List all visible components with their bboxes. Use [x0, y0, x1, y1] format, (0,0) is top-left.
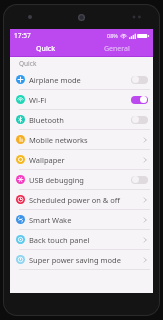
button[interactable]: Super power saving mode [10, 250, 153, 269]
other: Back touch panel [142, 235, 148, 245]
other: Scheduled power on & off [142, 195, 148, 205]
staticText: Scheduled power on & off [29, 195, 120, 205]
staticText: USB debugging [29, 175, 84, 185]
button[interactable]: Mobile networks [10, 130, 153, 149]
button[interactable]: Wallpaper [10, 150, 153, 169]
staticText: Airplane mode [29, 75, 81, 85]
staticText: 17:57 [14, 31, 31, 40]
button[interactable]: General [81, 42, 153, 56]
button[interactable]: Back touch panel [10, 230, 153, 249]
button[interactable]: Quick [10, 42, 81, 56]
staticText: Back touch panel [29, 235, 90, 245]
staticText: Super power saving mode [29, 255, 121, 265]
staticText: Smart Wake [29, 215, 72, 225]
other: Wallpaper [142, 155, 148, 165]
button[interactable]: USB debugging [10, 170, 153, 189]
staticText: Quick [36, 44, 56, 54]
staticText: 08% [107, 32, 118, 39]
staticText: Mobile networks [29, 135, 88, 145]
button[interactable]: Wi-Fi [10, 90, 153, 109]
staticText: Wallpaper [29, 155, 65, 165]
button[interactable]: Toggle off [131, 115, 148, 124]
button[interactable]: Toggle on [131, 95, 148, 104]
other: Smart Wake [142, 215, 148, 225]
button[interactable]: Scheduled power on & off [10, 190, 153, 209]
button[interactable]: Toggle off [131, 175, 148, 184]
staticText: Bluetooth [29, 115, 64, 125]
other: Super power saving mode [142, 255, 148, 265]
button[interactable]: Airplane mode [10, 70, 153, 89]
staticText: Wi-Fi [29, 95, 47, 105]
button[interactable]: Toggle off [131, 75, 148, 84]
other: Mobile networks [142, 135, 148, 145]
button[interactable]: Bluetooth [10, 110, 153, 129]
button[interactable]: Smart Wake [10, 210, 153, 229]
staticText: General [104, 44, 130, 54]
staticText: Quick [19, 59, 37, 68]
